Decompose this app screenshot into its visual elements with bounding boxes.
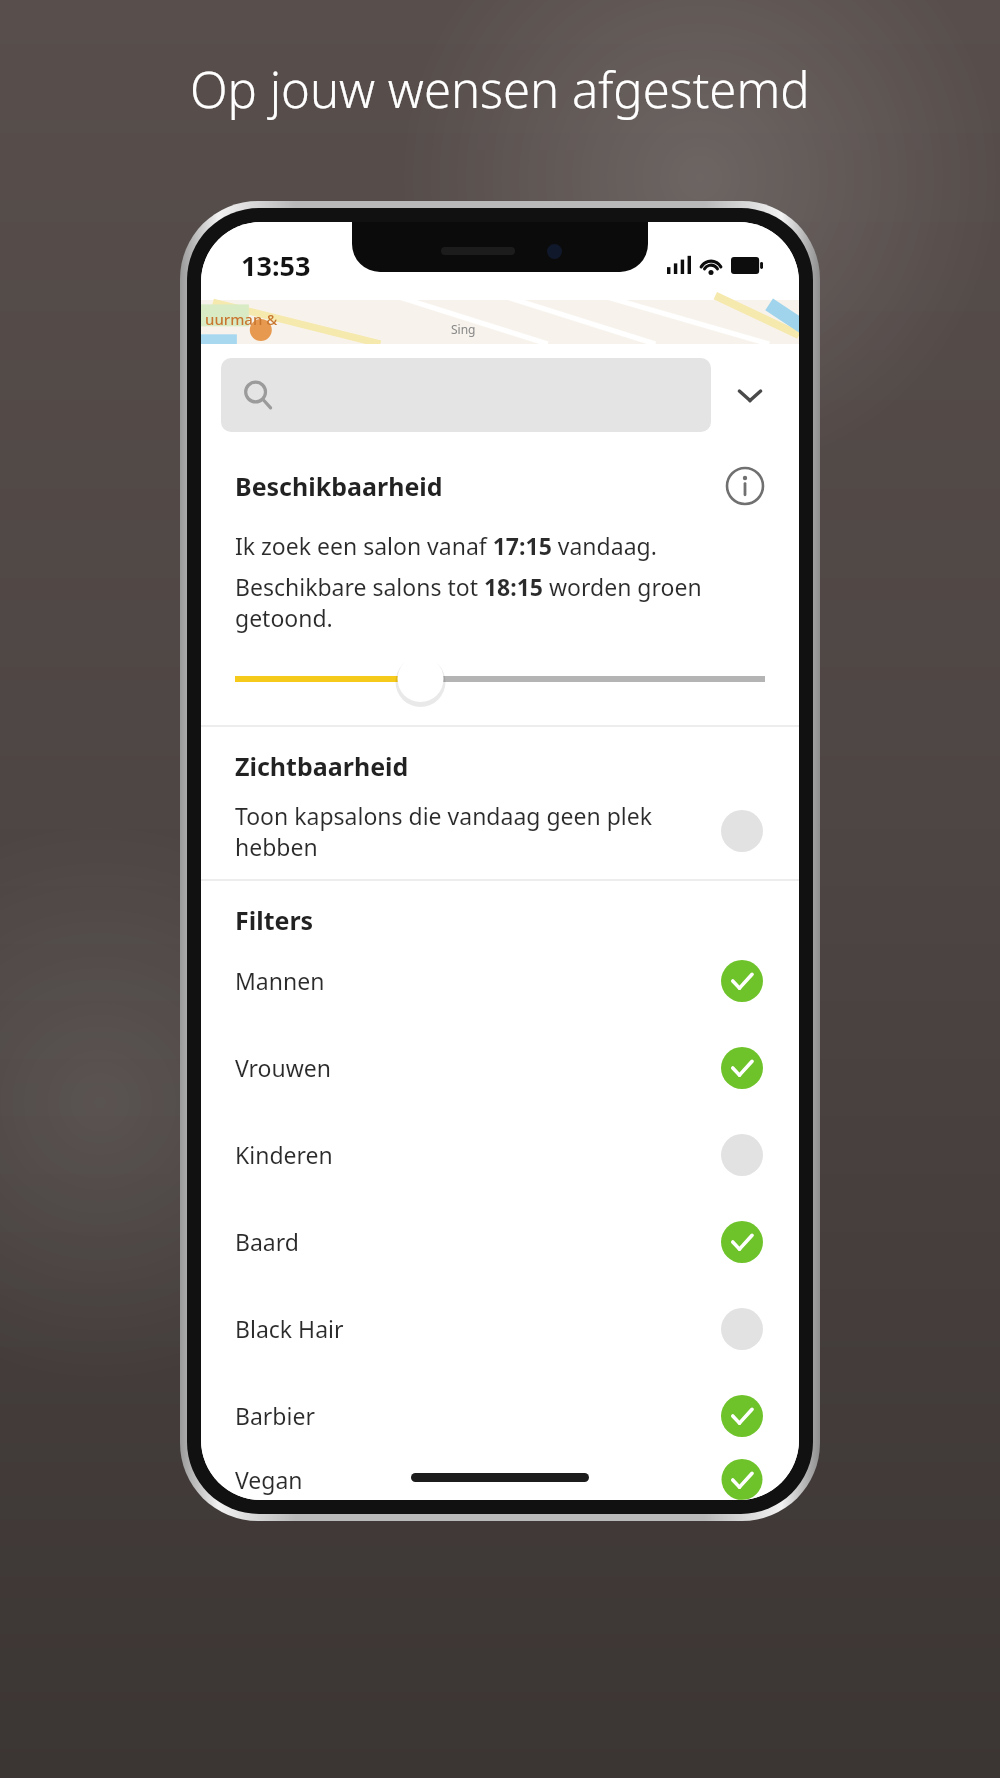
button[interactable]: Toon kapsalons die vandaag geen plek heb… [201, 783, 799, 879]
staticText: Vegan [235, 1464, 721, 1495]
staticText: Black Hair [235, 1313, 721, 1344]
staticText: 13:53 [241, 247, 311, 284]
button[interactable]: Informatie [721, 462, 769, 510]
staticText: Sing [451, 321, 476, 337]
staticText: uurman & [205, 309, 278, 329]
staticText: Zichtbaarheid [235, 749, 409, 783]
button[interactable]: Uitklappen [721, 366, 779, 424]
button[interactable] [221, 358, 711, 432]
staticText: Mannen [235, 965, 721, 996]
button[interactable]: Black Hair [201, 1285, 799, 1372]
staticText: Beschikbaarheid [235, 469, 721, 503]
button[interactable]: Vegan [201, 1459, 799, 1500]
button[interactable]: Mannen [201, 937, 799, 1024]
staticText: Filters [235, 903, 314, 937]
staticText: Vrouwen [235, 1052, 721, 1083]
staticText: Baard [235, 1226, 721, 1257]
button[interactable] [235, 633, 765, 725]
staticText: Barbier [235, 1400, 721, 1431]
staticText: Toon kapsalons die vandaag geen plek heb… [235, 800, 721, 862]
staticText: Beschikbare salons tot 18:15 worden groe… [235, 571, 775, 633]
staticText: Ik zoek een salon vanaf 17:15 vandaag. [235, 530, 657, 561]
button[interactable]: Barbier [201, 1372, 799, 1459]
button[interactable]: Vrouwen [201, 1024, 799, 1111]
button[interactable]: Baard [201, 1198, 799, 1285]
staticText: Kinderen [235, 1139, 721, 1170]
staticText: Op jouw wensen afgestemd [190, 56, 810, 123]
button[interactable]: Kinderen [201, 1111, 799, 1198]
